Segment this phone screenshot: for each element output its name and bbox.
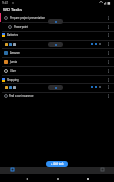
button[interactable]: More options bbox=[105, 75, 112, 84]
button[interactable]: More options bbox=[0, 83, 114, 91]
button[interactable]: More options bbox=[0, 40, 114, 48]
button[interactable]: More options bbox=[105, 83, 112, 91]
staticText: Jumia bbox=[10, 60, 17, 64]
button[interactable]: Recents bbox=[84, 175, 91, 182]
staticText: Uber bbox=[10, 69, 17, 73]
button[interactable]: + Add task bbox=[46, 161, 68, 167]
staticText: Prepare project presentation bbox=[10, 16, 45, 20]
staticText: Amazon bbox=[10, 51, 20, 55]
button[interactable]: Back bbox=[23, 175, 30, 182]
button[interactable]: More options bbox=[105, 31, 112, 39]
button[interactable]: Shopping bbox=[0, 75, 114, 84]
button[interactable]: More options bbox=[105, 13, 112, 22]
staticText: Batteries bbox=[7, 33, 18, 37]
button[interactable]: Find a car insurance bbox=[0, 92, 114, 100]
staticText: Account bbox=[97, 172, 107, 175]
button[interactable]: More options bbox=[105, 57, 112, 66]
button[interactable]: Home bbox=[54, 175, 61, 182]
button[interactable]: Tasks bbox=[0, 167, 24, 175]
staticText: 9:41 bbox=[2, 1, 9, 5]
button[interactable]: More options bbox=[105, 22, 112, 31]
staticText: Powerpoint bbox=[14, 25, 29, 29]
staticText: Find a car insurance bbox=[9, 94, 34, 98]
button[interactable]: Batteries bbox=[0, 31, 114, 39]
button[interactable]: Amazon bbox=[0, 48, 114, 57]
staticText: + Add task bbox=[51, 162, 64, 166]
button[interactable]: Prepare project presentation bbox=[0, 13, 114, 22]
button[interactable]: More options bbox=[105, 66, 112, 75]
button[interactable]: More options bbox=[105, 40, 112, 48]
staticText: Shopping bbox=[7, 78, 19, 82]
staticText: Tasks bbox=[9, 172, 16, 175]
button[interactable]: Account bbox=[90, 167, 114, 175]
button[interactable]: Jumia bbox=[0, 57, 114, 66]
staticText: WD Tasks bbox=[3, 7, 22, 13]
button[interactable]: More options bbox=[105, 92, 112, 100]
button[interactable]: Powerpoint bbox=[0, 22, 114, 31]
button[interactable]: More options bbox=[105, 48, 112, 57]
button[interactable]: Uber bbox=[0, 66, 114, 75]
